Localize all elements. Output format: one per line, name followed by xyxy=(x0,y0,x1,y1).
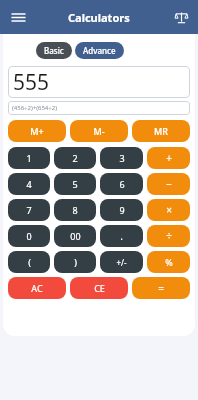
button[interactable]: − xyxy=(147,173,190,195)
button[interactable]: Menu xyxy=(6,5,30,29)
staticText: +/- xyxy=(116,257,127,268)
button[interactable]: CE xyxy=(70,277,128,299)
staticText: = xyxy=(158,281,164,295)
staticText: Basic xyxy=(44,45,64,56)
button[interactable]: 7 xyxy=(8,199,50,221)
staticText: M- xyxy=(93,125,105,137)
staticText: 1 xyxy=(26,152,32,164)
staticText: CE xyxy=(94,282,105,294)
button[interactable]: AC xyxy=(8,277,66,299)
button[interactable]: +/- xyxy=(100,251,143,273)
button[interactable]: MR xyxy=(132,120,190,142)
staticText: ( xyxy=(28,256,31,268)
button[interactable]: 0 xyxy=(8,225,50,247)
button[interactable]: M+ xyxy=(8,120,66,142)
staticText: M+ xyxy=(30,125,44,137)
staticText: 0 xyxy=(26,230,32,242)
button[interactable]: ÷ xyxy=(147,225,190,247)
staticText: 555 xyxy=(13,68,50,97)
staticText: . xyxy=(120,229,123,243)
button[interactable]: ) xyxy=(54,251,96,273)
button[interactable]: ( xyxy=(8,251,50,273)
staticText: Calculators xyxy=(68,10,130,25)
staticText: 9 xyxy=(119,204,125,216)
staticText: × xyxy=(166,203,172,217)
staticText: 4 xyxy=(26,178,32,190)
staticText: 6 xyxy=(119,178,125,190)
staticText: AC xyxy=(31,282,43,294)
button[interactable]: . xyxy=(100,225,143,247)
button[interactable]: + xyxy=(147,147,190,169)
button[interactable]: Advance xyxy=(75,42,124,59)
staticText: 5 xyxy=(72,178,78,190)
staticText: ) xyxy=(74,256,77,268)
staticText: + xyxy=(166,151,172,165)
button[interactable]: 9 xyxy=(100,199,143,221)
button[interactable]: 3 xyxy=(100,147,143,169)
button[interactable]: 8 xyxy=(54,199,96,221)
staticText: 7 xyxy=(26,204,32,216)
button[interactable]: 2 xyxy=(54,147,96,169)
button[interactable]: 1 xyxy=(8,147,50,169)
staticText: 00 xyxy=(70,230,81,242)
button[interactable]: × xyxy=(147,199,190,221)
button[interactable]: Basic xyxy=(36,42,72,59)
button[interactable]: % xyxy=(147,251,190,273)
button[interactable]: 555 xyxy=(8,66,190,98)
button[interactable]: = xyxy=(132,277,190,299)
staticText: Advance xyxy=(83,45,116,56)
button[interactable]: 5 xyxy=(54,173,96,195)
button[interactable]: Unit converter xyxy=(170,6,192,28)
button[interactable]: M- xyxy=(70,120,128,142)
staticText: 2 xyxy=(72,152,78,164)
button[interactable]: 6 xyxy=(100,173,143,195)
staticText: ÷ xyxy=(166,229,172,243)
staticText: % xyxy=(165,256,173,268)
button[interactable]: 00 xyxy=(54,225,96,247)
staticText: MR xyxy=(154,125,168,137)
staticText: − xyxy=(166,177,172,191)
button[interactable]: 4 xyxy=(8,173,50,195)
staticText: (456÷2)+(654÷2) xyxy=(12,104,57,112)
staticText: 8 xyxy=(72,204,78,216)
staticText: 3 xyxy=(119,152,125,164)
